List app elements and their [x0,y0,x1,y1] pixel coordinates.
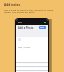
staticText: Save [40,26,45,29]
staticText: Milk, 2 litres [18,46,31,49]
staticText: Tap a note to track a size, amount or ex… [4,8,60,14]
staticText: Add notes [4,3,21,7]
staticText: Add a Photo [18,26,34,30]
button[interactable]: Save [39,26,46,29]
staticText: 9:41 [18,21,22,24]
